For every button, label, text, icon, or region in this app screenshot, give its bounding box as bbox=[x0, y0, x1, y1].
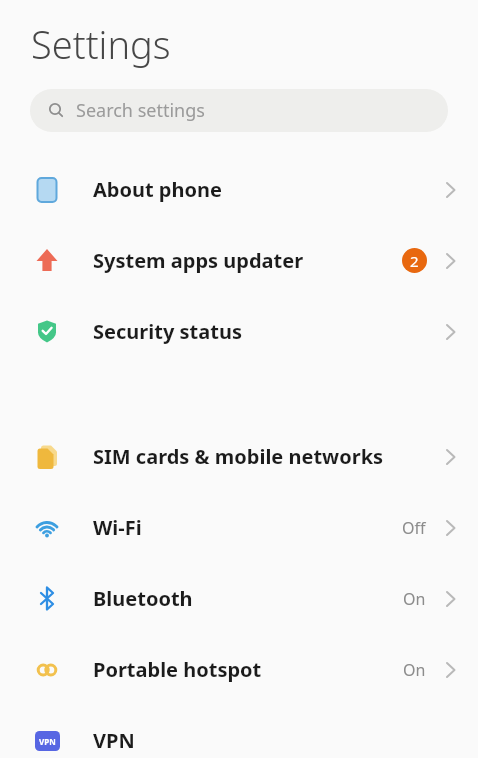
button[interactable]: System apps updater bbox=[0, 225, 478, 296]
button[interactable]: Wi-Fi bbox=[0, 492, 478, 563]
staticText: About phone bbox=[93, 176, 222, 203]
button[interactable]: Security status bbox=[0, 296, 478, 367]
staticText: VPN bbox=[39, 736, 56, 747]
button[interactable]: VPN bbox=[0, 705, 478, 758]
staticText: 2 bbox=[410, 251, 419, 271]
button[interactable]: Search settings bbox=[30, 89, 448, 132]
staticText: System apps updater bbox=[93, 247, 304, 274]
staticText: Portable hotspot bbox=[93, 656, 262, 683]
button[interactable]: Bluetooth bbox=[0, 563, 478, 634]
button[interactable]: About phone bbox=[0, 154, 478, 225]
button[interactable]: Portable hotspot bbox=[0, 634, 478, 705]
staticText: On bbox=[403, 659, 426, 681]
button[interactable]: SIM cards & mobile networks bbox=[0, 421, 478, 492]
staticText: Search settings bbox=[76, 98, 205, 123]
staticText: Settings bbox=[31, 18, 171, 70]
staticText: Bluetooth bbox=[93, 585, 193, 612]
staticText: SIM cards & mobile networks bbox=[93, 443, 384, 470]
staticText: Security status bbox=[93, 318, 242, 345]
staticText: On bbox=[403, 588, 426, 610]
staticText: Wi-Fi bbox=[93, 514, 142, 541]
staticText: VPN bbox=[93, 727, 135, 754]
staticText: Off bbox=[402, 517, 426, 539]
